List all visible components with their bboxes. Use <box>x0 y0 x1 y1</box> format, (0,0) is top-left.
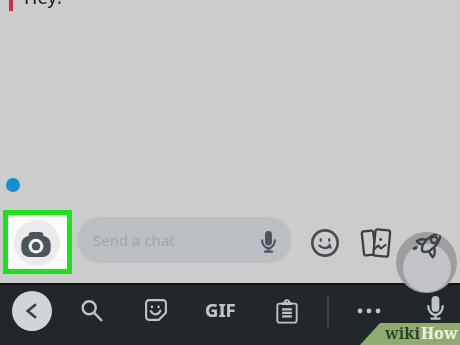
button[interactable]: Emoji <box>309 227 341 259</box>
button[interactable]: Back <box>12 291 52 331</box>
staticText: GIF <box>205 297 236 322</box>
staticText: How <box>421 322 458 344</box>
button[interactable]: Clipboard <box>274 299 300 325</box>
staticText: wiki <box>385 322 421 344</box>
button[interactable]: Voice message <box>414 287 454 327</box>
button[interactable]: More options <box>349 291 389 331</box>
button[interactable]: Stickers <box>143 297 169 323</box>
staticText: Send a chat <box>93 230 175 250</box>
button[interactable]: Send a chat <box>77 217 292 263</box>
button[interactable]: Memories <box>356 224 396 262</box>
button[interactable]: Rocket <box>396 232 457 293</box>
button[interactable]: Search <box>72 292 112 332</box>
button[interactable]: Camera <box>8 215 67 269</box>
staticText: Hey! <box>24 0 62 10</box>
button[interactable]: GIF <box>198 291 242 331</box>
